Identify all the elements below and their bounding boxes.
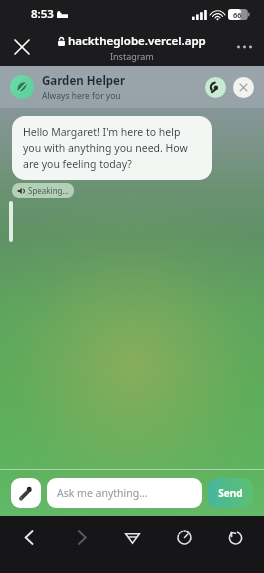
button[interactable]: Close (6, 31, 38, 63)
staticText: 66 (233, 10, 242, 20)
button[interactable]: Close assistant (233, 77, 254, 98)
button[interactable]: Back (12, 520, 46, 554)
button[interactable]: Reload (218, 520, 252, 554)
button[interactable]: Voice mode (205, 77, 226, 98)
button[interactable]: Reader (167, 520, 201, 554)
staticText: Instagram (110, 50, 154, 62)
staticText: Speaking... (28, 185, 69, 196)
button[interactable]: Forward (64, 520, 98, 554)
staticText: hacktheglobe.vercel.app (68, 33, 206, 49)
staticText: Garden Helper (42, 73, 126, 89)
staticText: Send (218, 486, 243, 500)
button[interactable]: Send (208, 478, 253, 508)
staticText: Always here for you (42, 90, 121, 102)
staticText: Hello Margaret! I'm here to help you wit… (23, 125, 201, 171)
button[interactable]: Voice input (11, 478, 41, 508)
button[interactable]: More options (229, 32, 259, 62)
button[interactable]: Ask me anything... (47, 478, 202, 508)
button[interactable]: Share (115, 520, 149, 554)
staticText: Ask me anything... (57, 486, 148, 500)
staticText: 8:53 (31, 6, 54, 22)
